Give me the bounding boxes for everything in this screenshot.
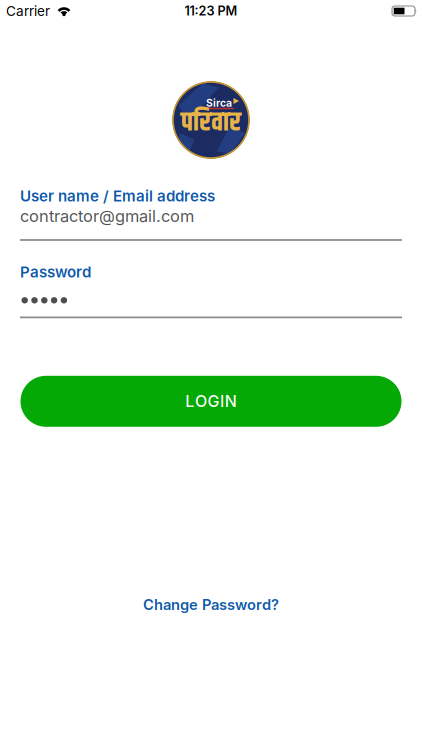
staticText: Carrier bbox=[6, 3, 50, 19]
button[interactable]: LOGIN bbox=[20, 376, 401, 427]
staticText: परिवार bbox=[181, 103, 241, 143]
staticText: 11:23 PM bbox=[184, 3, 237, 19]
button[interactable]: Change Password? bbox=[143, 596, 279, 613]
staticText: Password bbox=[20, 263, 91, 281]
staticText: Change Password? bbox=[143, 596, 279, 613]
staticText: contractor@gmail.com bbox=[20, 206, 194, 226]
staticText: LOGIN bbox=[185, 392, 237, 411]
staticText: User name / Email address bbox=[20, 187, 215, 205]
staticText: Sirca bbox=[206, 97, 232, 109]
